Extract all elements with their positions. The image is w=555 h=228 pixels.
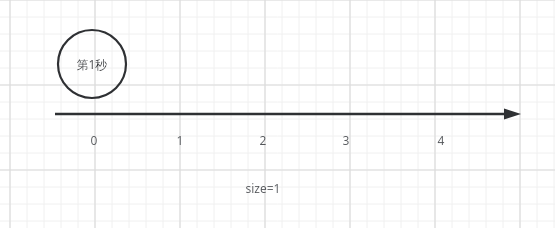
button[interactable]: Timeline diagram, size = 1 — [0, 0, 555, 228]
